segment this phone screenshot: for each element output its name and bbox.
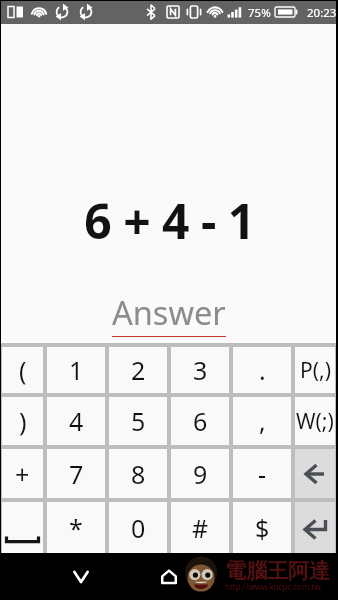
button[interactable]: 4 — [47, 397, 105, 445]
staticText: 電腦王阿達 — [225, 558, 330, 584]
staticText: 6 — [193, 404, 208, 438]
staticText: ) — [19, 404, 27, 438]
staticText: ( — [19, 353, 27, 387]
staticText: 75% — [248, 5, 271, 21]
staticText: 20:23 — [307, 5, 337, 21]
button[interactable]: 7 — [47, 449, 105, 498]
button[interactable]: 6 — [171, 397, 229, 445]
staticText: , — [259, 404, 266, 438]
button[interactable]: , — [233, 397, 291, 445]
button[interactable]: W(;) — [295, 397, 335, 445]
staticText: P(,) — [300, 356, 331, 385]
button[interactable]: Backspace — [295, 449, 335, 498]
button[interactable]: ) — [2, 397, 43, 445]
button[interactable]: $ — [233, 502, 291, 553]
staticText: 4 — [69, 404, 84, 438]
staticText: 0 — [131, 511, 146, 545]
staticText: + — [15, 457, 30, 491]
button[interactable]: Back — [63, 559, 99, 595]
button[interactable]: # — [171, 502, 229, 553]
button[interactable]: Enter — [295, 502, 335, 553]
button[interactable]: ( — [2, 347, 43, 393]
button[interactable]: + — [2, 449, 43, 498]
staticText: * — [69, 511, 83, 545]
staticText: - — [258, 457, 267, 491]
staticText: 9 — [193, 457, 208, 491]
button[interactable]: 9 — [171, 449, 229, 498]
staticText: Answer — [112, 290, 226, 334]
staticText: W(;) — [296, 407, 334, 436]
staticText: $ — [255, 511, 270, 545]
button[interactable]: 3 — [171, 347, 229, 393]
button[interactable]: 0 — [109, 502, 167, 553]
staticText: 7 — [69, 457, 84, 491]
staticText: 1 — [69, 353, 84, 387]
button[interactable]: 2 — [109, 347, 167, 393]
button[interactable]: 5 — [109, 397, 167, 445]
button[interactable]: 1 — [47, 347, 105, 393]
staticText: . — [259, 353, 266, 387]
button[interactable]: - — [233, 449, 291, 498]
button[interactable]: Answer — [1, 290, 336, 337]
staticText: 3 — [193, 353, 208, 387]
staticText: 8 — [131, 457, 146, 491]
staticText: # — [192, 511, 209, 545]
staticText: 5 — [131, 404, 146, 438]
button[interactable]: 8 — [109, 449, 167, 498]
staticText: http://www.kocpc.com.tw — [225, 581, 321, 592]
staticText: 6 + 4 - 1 — [2, 188, 337, 253]
button[interactable]: Home — [151, 559, 187, 595]
button[interactable]: Space — [2, 502, 43, 553]
button[interactable]: . — [233, 347, 291, 393]
button[interactable]: * — [47, 502, 105, 553]
staticText: 2 — [131, 353, 146, 387]
button[interactable]: P(,) — [295, 347, 335, 393]
